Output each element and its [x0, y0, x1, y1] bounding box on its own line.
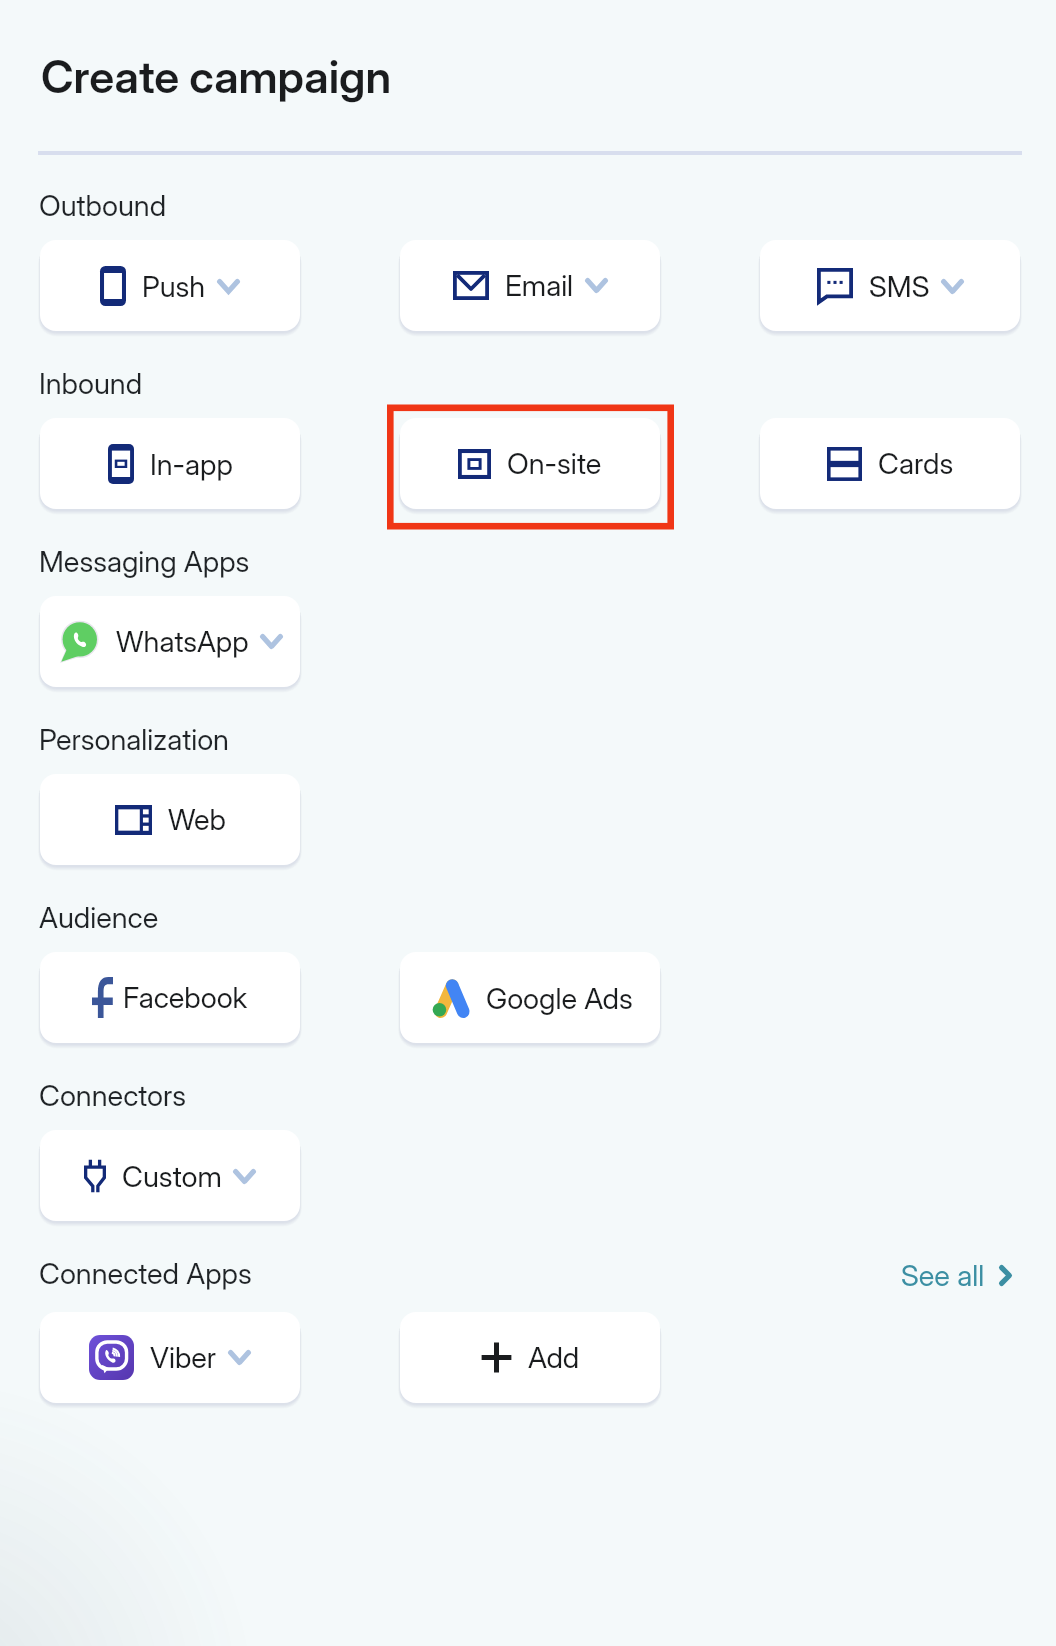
staticText: Outbound	[39, 188, 167, 223]
button[interactable]: Facebook	[40, 952, 300, 1043]
staticText: SMS	[869, 269, 930, 304]
staticText: Create campaign	[41, 49, 392, 103]
staticText: Connected Apps	[39, 1256, 252, 1291]
button[interactable]: Push	[40, 240, 300, 331]
button[interactable]: Web	[40, 774, 300, 865]
staticText: WhatsApp	[116, 624, 249, 659]
staticText: On-site	[507, 446, 602, 481]
button[interactable]: Custom	[40, 1130, 300, 1221]
staticText: Facebook	[123, 980, 248, 1015]
button[interactable]: See all	[901, 1258, 1012, 1293]
staticText: Personalization	[39, 722, 229, 757]
staticText: Add	[528, 1340, 580, 1375]
staticText: Cards	[878, 446, 954, 481]
button[interactable]: WhatsApp	[40, 596, 300, 687]
staticText: Messaging Apps	[39, 544, 250, 579]
button[interactable]: Viber	[40, 1312, 300, 1403]
button[interactable]: Google Ads	[400, 952, 660, 1043]
staticText: Web	[168, 802, 226, 837]
staticText: See all	[901, 1258, 985, 1293]
button[interactable]: Add	[400, 1312, 660, 1403]
button[interactable]: SMS	[760, 240, 1020, 331]
staticText: Push	[142, 269, 206, 304]
button[interactable]: In-app	[40, 418, 300, 509]
staticText: Google Ads	[486, 981, 633, 1016]
staticText: Email	[505, 268, 574, 303]
staticText: Inbound	[39, 366, 143, 401]
button[interactable]: Email	[400, 240, 660, 331]
staticText: Audience	[39, 900, 159, 935]
button[interactable]: On-site	[400, 418, 660, 509]
staticText: Custom	[122, 1159, 222, 1194]
button[interactable]: Cards	[760, 418, 1020, 509]
staticText: Viber	[150, 1340, 217, 1375]
staticText: Connectors	[39, 1078, 187, 1113]
staticText: In-app	[150, 447, 233, 482]
